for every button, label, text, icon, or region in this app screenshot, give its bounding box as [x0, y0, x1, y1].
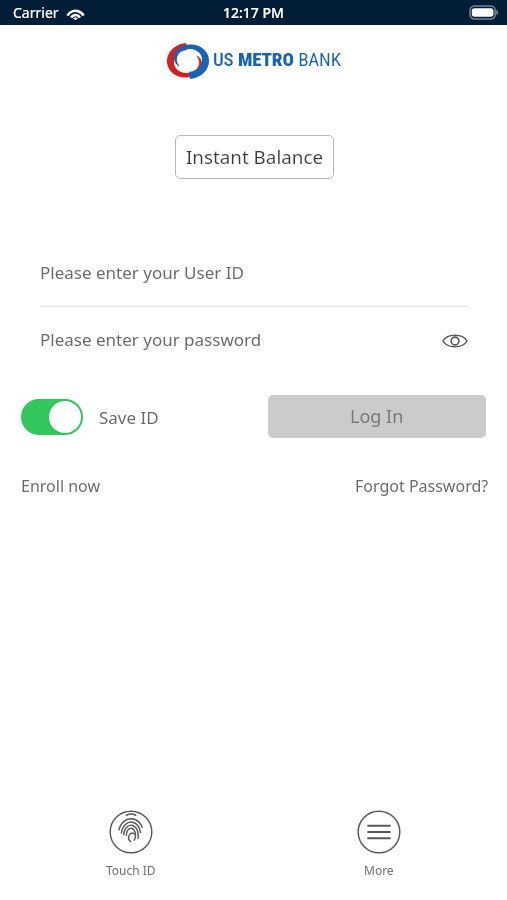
staticText: 12:17 PM: [223, 3, 284, 22]
staticText: US: [213, 48, 238, 70]
staticText: Save ID: [99, 406, 159, 429]
button[interactable]: Log In: [268, 395, 486, 438]
button[interactable]: Instant Balance: [175, 135, 334, 179]
button[interactable]: Please enter your User ID: [40, 250, 468, 294]
button[interactable]: Forgot Password?: [355, 475, 489, 497]
staticText: Carrier: [13, 3, 59, 22]
staticText: Forgot Password?: [355, 475, 489, 497]
staticText: Enroll now: [21, 475, 100, 497]
staticText: More: [364, 862, 394, 878]
staticText: Please enter your password: [40, 328, 262, 351]
button[interactable]: More: [348, 810, 409, 878]
button[interactable]: Show password: [440, 326, 470, 356]
button[interactable]: Save ID: [21, 399, 159, 435]
staticText: BANK: [294, 48, 341, 70]
staticText: Instant Balance: [186, 144, 324, 170]
staticText: Log In: [350, 404, 404, 429]
staticText: Please enter your User ID: [40, 261, 244, 284]
button[interactable]: Please enter your password: [40, 317, 468, 361]
button[interactable]: Touch ID: [100, 810, 161, 878]
staticText: Touch ID: [106, 862, 156, 878]
staticText: METRO: [238, 48, 294, 70]
button[interactable]: Enroll now: [21, 474, 100, 498]
